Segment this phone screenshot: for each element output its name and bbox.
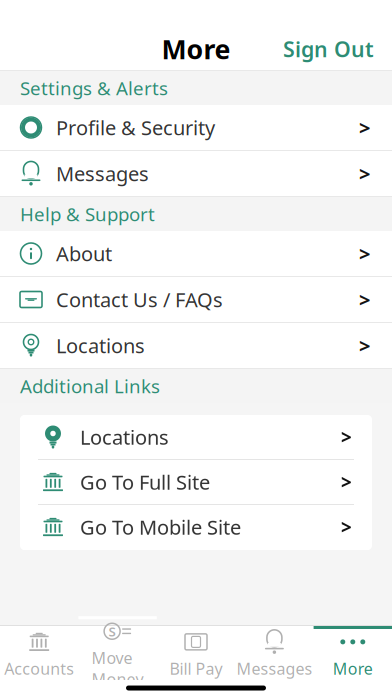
button[interactable]: Sign Out bbox=[269, 27, 388, 71]
staticText: Settings & Alerts bbox=[20, 76, 168, 100]
button[interactable]: Locations bbox=[0, 323, 392, 369]
staticText: Contact Us / FAQs bbox=[56, 286, 223, 313]
button[interactable]: Accounts bbox=[0, 626, 78, 680]
staticText: Profile & Security bbox=[56, 114, 215, 141]
staticText: > bbox=[359, 114, 370, 141]
button[interactable]: About bbox=[0, 231, 392, 277]
button[interactable]: Contact Us / FAQs bbox=[0, 277, 392, 323]
staticText: > bbox=[359, 286, 370, 313]
staticText: Locations bbox=[80, 424, 169, 450]
staticText: > bbox=[359, 332, 370, 359]
button[interactable]: Bill Pay bbox=[157, 626, 235, 680]
staticText: Locations bbox=[56, 332, 145, 359]
button[interactable]: More bbox=[314, 626, 392, 680]
staticText: More bbox=[161, 31, 230, 67]
staticText: Help & Support bbox=[20, 202, 155, 226]
staticText: Bill Pay bbox=[169, 658, 222, 679]
staticText: Move Money bbox=[92, 647, 144, 690]
staticText: Messages bbox=[236, 658, 312, 679]
button[interactable]: Messages bbox=[0, 151, 392, 197]
button[interactable]: Go To Full Site bbox=[20, 460, 372, 505]
staticText: Sign Out bbox=[283, 35, 374, 63]
staticText: > bbox=[341, 515, 352, 539]
staticText: Accounts bbox=[4, 658, 74, 679]
button[interactable]: Locations bbox=[20, 415, 372, 460]
staticText: About bbox=[56, 240, 112, 267]
staticText: > bbox=[359, 240, 370, 267]
button[interactable]: Messages bbox=[235, 626, 314, 680]
staticText: > bbox=[359, 160, 370, 187]
button[interactable]: S bbox=[78, 626, 157, 680]
staticText: More bbox=[333, 658, 373, 679]
staticText: > bbox=[341, 425, 352, 449]
button[interactable]: Go To Mobile Site bbox=[20, 505, 372, 550]
staticText: Go To Full Site bbox=[80, 469, 210, 495]
staticText: Go To Mobile Site bbox=[80, 514, 241, 540]
staticText: Messages bbox=[56, 160, 149, 187]
staticText: > bbox=[341, 470, 352, 494]
button[interactable]: Profile & Security bbox=[0, 105, 392, 151]
staticText: S bbox=[109, 622, 116, 640]
staticText: Additional Links bbox=[20, 374, 160, 398]
